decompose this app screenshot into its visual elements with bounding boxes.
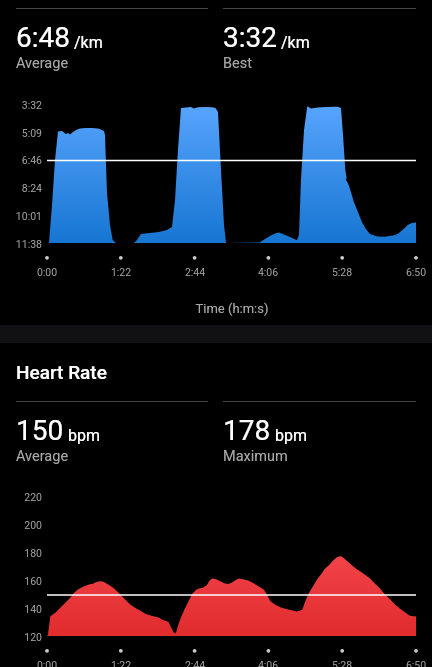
staticText: 180 bbox=[0, 547, 42, 559]
staticText: 6:50 bbox=[396, 659, 432, 667]
staticText: Best bbox=[223, 55, 252, 72]
staticText: 8:24 bbox=[0, 182, 42, 194]
staticText: 120 bbox=[0, 631, 42, 643]
staticText: 5:28 bbox=[322, 659, 362, 667]
staticText: Maximum bbox=[223, 448, 288, 465]
staticText: 1:22 bbox=[101, 659, 141, 667]
staticText: 5:09 bbox=[0, 127, 42, 139]
staticText: 3:32 bbox=[223, 21, 277, 54]
button[interactable]: 150 bbox=[16, 401, 208, 465]
staticText: 150 bbox=[16, 414, 64, 447]
staticText: 140 bbox=[0, 603, 42, 615]
button[interactable]: 6:48 bbox=[16, 8, 208, 72]
button[interactable]: 3:32 bbox=[223, 8, 416, 72]
staticText: 11:38 bbox=[0, 238, 42, 250]
staticText: 5:28 bbox=[322, 266, 362, 278]
staticText: Average bbox=[16, 55, 69, 72]
staticText: 178 bbox=[223, 414, 271, 447]
staticText: 6:48 bbox=[16, 21, 70, 54]
staticText: 200 bbox=[0, 519, 42, 531]
staticText: Time (h:m:s) bbox=[152, 301, 312, 316]
staticText: 4:06 bbox=[248, 266, 288, 278]
staticText: 220 bbox=[0, 491, 42, 503]
staticText: 0:00 bbox=[27, 659, 67, 667]
staticText: 3:32 bbox=[0, 99, 42, 111]
staticText: bpm bbox=[275, 426, 307, 445]
staticText: 2:44 bbox=[175, 659, 215, 667]
staticText: 1:22 bbox=[101, 266, 141, 278]
staticText: Average bbox=[16, 448, 69, 465]
button[interactable]: 178 bbox=[223, 401, 416, 465]
staticText: bpm bbox=[68, 426, 100, 445]
staticText: /km bbox=[281, 33, 310, 52]
staticText: 6:50 bbox=[396, 266, 432, 278]
staticText: 10:01 bbox=[0, 210, 42, 222]
staticText: 4:06 bbox=[248, 659, 288, 667]
staticText: /km bbox=[74, 33, 103, 52]
staticText: 6:46 bbox=[0, 154, 42, 166]
staticText: 160 bbox=[0, 575, 42, 587]
staticText: 2:44 bbox=[175, 266, 215, 278]
staticText: 0:00 bbox=[27, 266, 67, 278]
staticText: Heart Rate bbox=[16, 361, 107, 383]
